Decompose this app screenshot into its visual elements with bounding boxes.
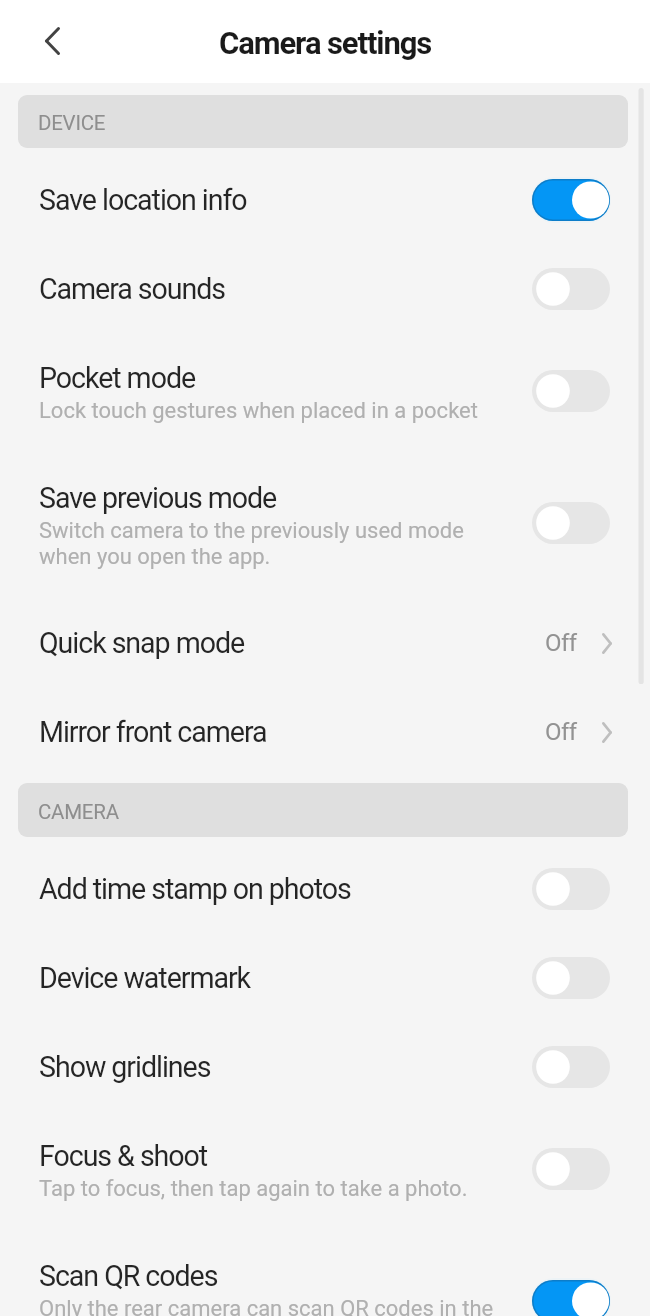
button[interactable]: Off	[532, 369, 610, 413]
staticText: Save location info	[39, 183, 247, 217]
button[interactable]: Scan QR codes	[0, 1224, 650, 1316]
button[interactable]: Off	[532, 1147, 610, 1191]
button[interactable]: Quick snap mode	[0, 591, 650, 680]
button[interactable]: Off	[532, 267, 610, 311]
staticText: Camera settings	[219, 25, 432, 61]
staticText: Camera sounds	[39, 272, 226, 306]
staticText: Lock touch gestures when placed in a poc…	[39, 398, 478, 424]
button[interactable]: Save location info	[0, 148, 650, 237]
button[interactable]: Off	[532, 867, 610, 911]
button[interactable]: Save previous mode	[0, 446, 650, 591]
staticText: Switch camera to the previously used mod…	[39, 518, 464, 569]
button[interactable]: Device watermark	[0, 926, 650, 1015]
staticText: Show gridlines	[39, 1050, 211, 1084]
button[interactable]: Camera sounds	[0, 237, 650, 326]
staticText: Focus & shoot	[39, 1139, 208, 1173]
staticText: Save previous mode	[39, 481, 277, 515]
staticText: CAMERA	[38, 800, 119, 824]
button[interactable]: On	[532, 1279, 610, 1316]
staticText: DEVICE	[38, 111, 106, 135]
staticText: Mirror front camera	[39, 715, 267, 749]
staticText: Only the rear camera can scan QR codes i…	[39, 1296, 494, 1316]
staticText: Tap to focus, then tap again to take a p…	[39, 1176, 468, 1202]
button[interactable]: Off	[532, 1045, 610, 1089]
button[interactable]: Focus & shoot	[0, 1104, 650, 1224]
staticText: Scan QR codes	[39, 1259, 218, 1293]
button[interactable]: Off	[532, 956, 610, 1000]
staticText: Off	[545, 629, 577, 657]
staticText: Off	[545, 718, 577, 746]
button[interactable]: Add time stamp on photos	[0, 837, 650, 926]
button[interactable]: Pocket mode	[0, 326, 650, 446]
staticText: Quick snap mode	[39, 626, 245, 660]
staticText: Device watermark	[39, 961, 251, 995]
button[interactable]: Off	[532, 501, 610, 545]
button[interactable]: Mirror front camera	[0, 680, 650, 769]
staticText: Add time stamp on photos	[39, 872, 351, 906]
button[interactable]: On	[532, 178, 610, 222]
staticText: Pocket mode	[39, 361, 196, 395]
button[interactable]: Back	[32, 21, 72, 61]
button[interactable]: Show gridlines	[0, 1015, 650, 1104]
